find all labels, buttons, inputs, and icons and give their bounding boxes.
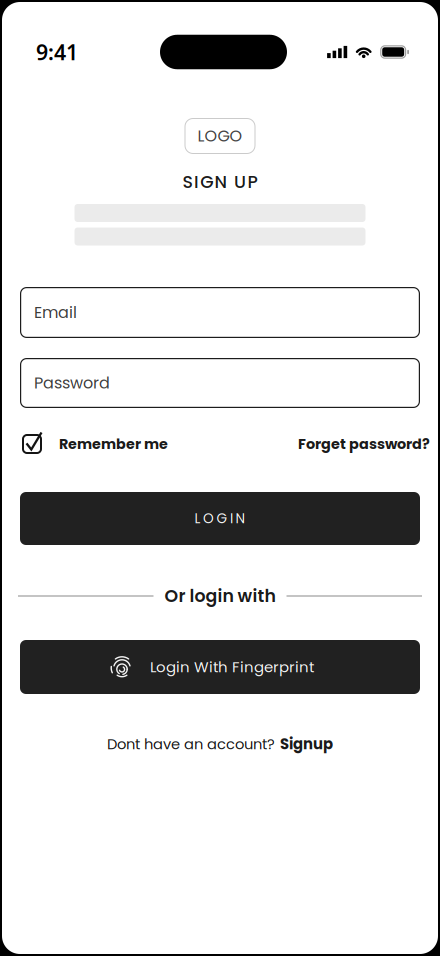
button[interactable]: Signup <box>280 734 333 754</box>
staticText: Or login with <box>164 584 275 608</box>
button[interactable]: LOGIN <box>20 492 420 545</box>
staticText: Password <box>34 372 110 394</box>
staticText: SIGN UP <box>183 170 257 194</box>
staticText: LOGIN <box>194 509 246 528</box>
staticText: Signup <box>280 734 333 754</box>
staticText: LOGO <box>197 125 242 147</box>
staticText: Email <box>34 301 77 324</box>
button[interactable]: Forget password? <box>298 434 430 454</box>
button[interactable]: Login With Fingerprint <box>20 640 420 694</box>
staticText: Login With Fingerprint <box>150 656 314 677</box>
button[interactable]: Email <box>20 287 420 338</box>
staticText: 9:41 <box>36 38 78 66</box>
button[interactable]: Remember me <box>22 434 168 454</box>
staticText: Forget password? <box>298 434 430 454</box>
staticText: Remember me <box>59 434 168 454</box>
staticText: Dont have an account? <box>107 734 275 754</box>
button[interactable]: Password <box>20 358 420 408</box>
